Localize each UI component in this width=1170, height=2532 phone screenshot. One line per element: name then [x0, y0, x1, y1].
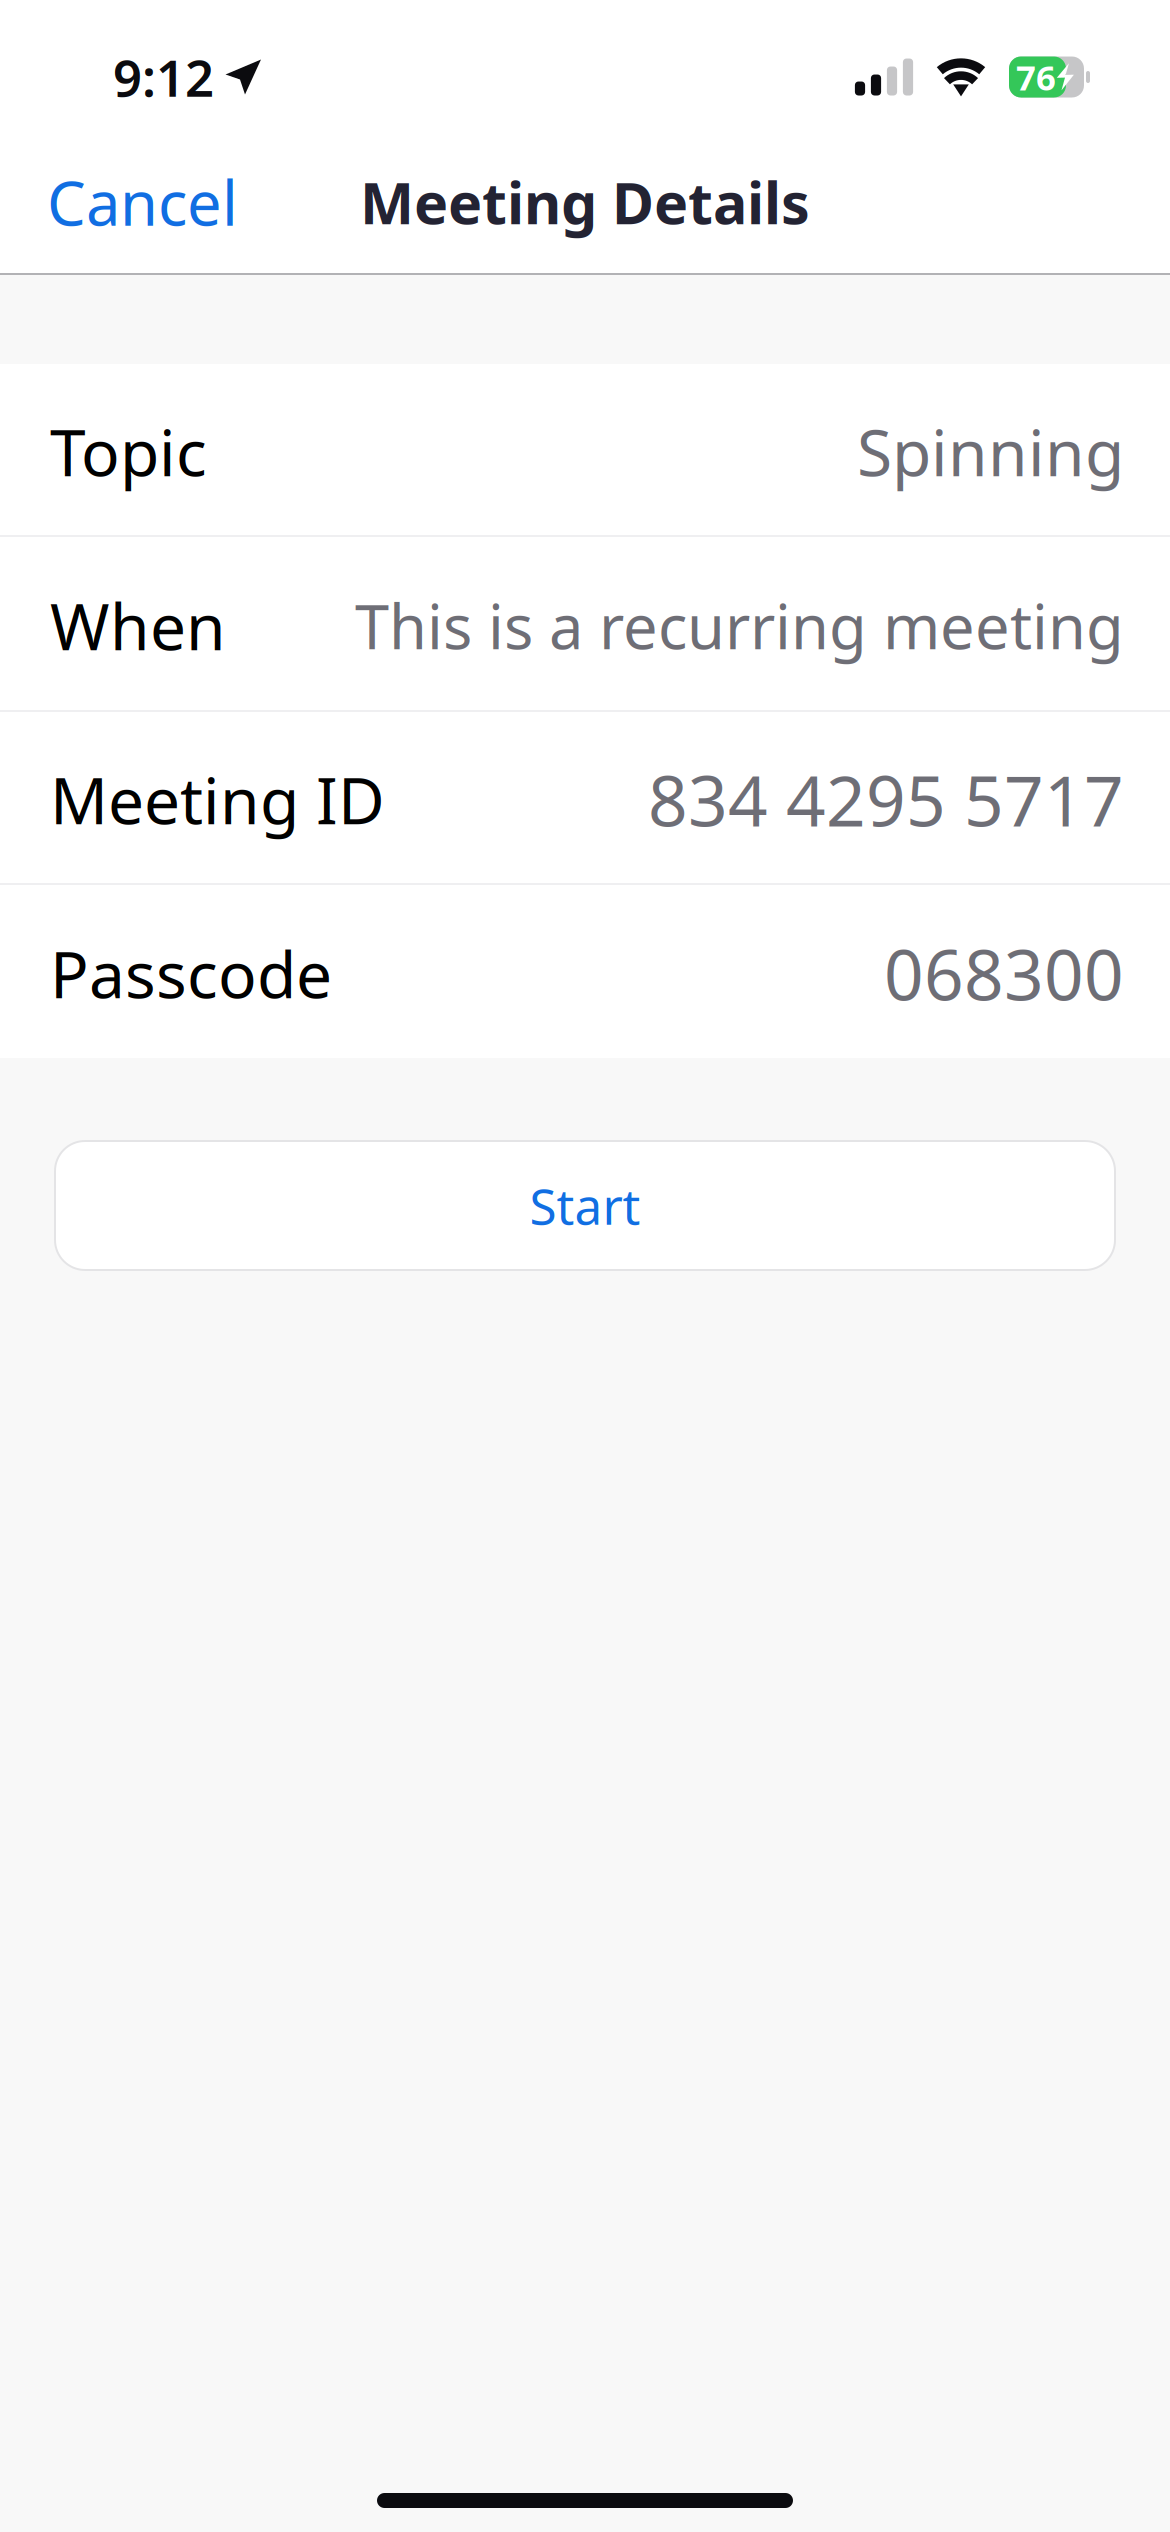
button[interactable]: Cancel	[0, 141, 285, 263]
staticText: 834 4295 5717	[648, 753, 1124, 846]
staticText: Topic	[50, 409, 207, 494]
staticText: Spinning	[857, 409, 1124, 494]
staticText: 9:12	[113, 43, 214, 111]
staticText: When	[50, 583, 226, 668]
button[interactable]: Start	[55, 1141, 1115, 1270]
staticText: Meeting ID	[50, 757, 385, 842]
staticText: 76	[1016, 54, 1056, 100]
staticText: Start	[529, 1173, 640, 1238]
staticText: 068300	[884, 927, 1124, 1020]
staticText: Cancel	[47, 161, 238, 243]
staticText: Meeting Details	[360, 164, 810, 240]
staticText: Passcode	[50, 931, 332, 1016]
staticText: This is a recurring meeting	[355, 585, 1124, 666]
